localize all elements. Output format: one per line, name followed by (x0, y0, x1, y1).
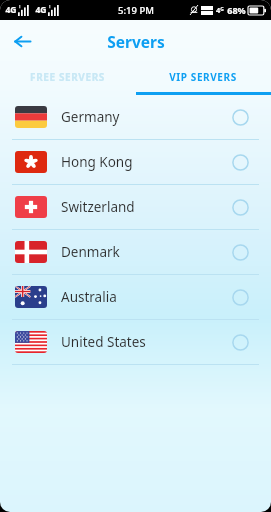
button[interactable]: Australia (0, 275, 271, 319)
staticText: 68% (227, 4, 246, 16)
staticText: FREE SERVERS (30, 70, 105, 84)
staticText: Germany (61, 108, 232, 126)
staticText: 4ᴳ (216, 5, 224, 15)
button[interactable]: United States (0, 320, 271, 364)
staticText: United States (61, 333, 232, 351)
staticText: Australia (61, 288, 232, 306)
button[interactable]: Denmark (0, 230, 271, 274)
button[interactable]: Switzerland (0, 185, 271, 229)
button[interactable]: Germany (0, 95, 271, 139)
button[interactable]: Back (8, 27, 36, 55)
staticText: 5:19 PM (118, 4, 154, 17)
button[interactable]: Hong Kong (0, 140, 271, 184)
staticText: 4G (5, 4, 17, 16)
staticText: Switzerland (61, 198, 232, 216)
button[interactable]: FREE SERVERS (0, 62, 135, 92)
staticText: Hong Kong (61, 153, 232, 171)
button[interactable]: VIP SERVERS (135, 62, 271, 92)
staticText: VIP SERVERS (169, 70, 237, 84)
staticText: Servers (107, 31, 165, 52)
staticText: Denmark (61, 243, 232, 261)
staticText: 4G (35, 4, 47, 16)
